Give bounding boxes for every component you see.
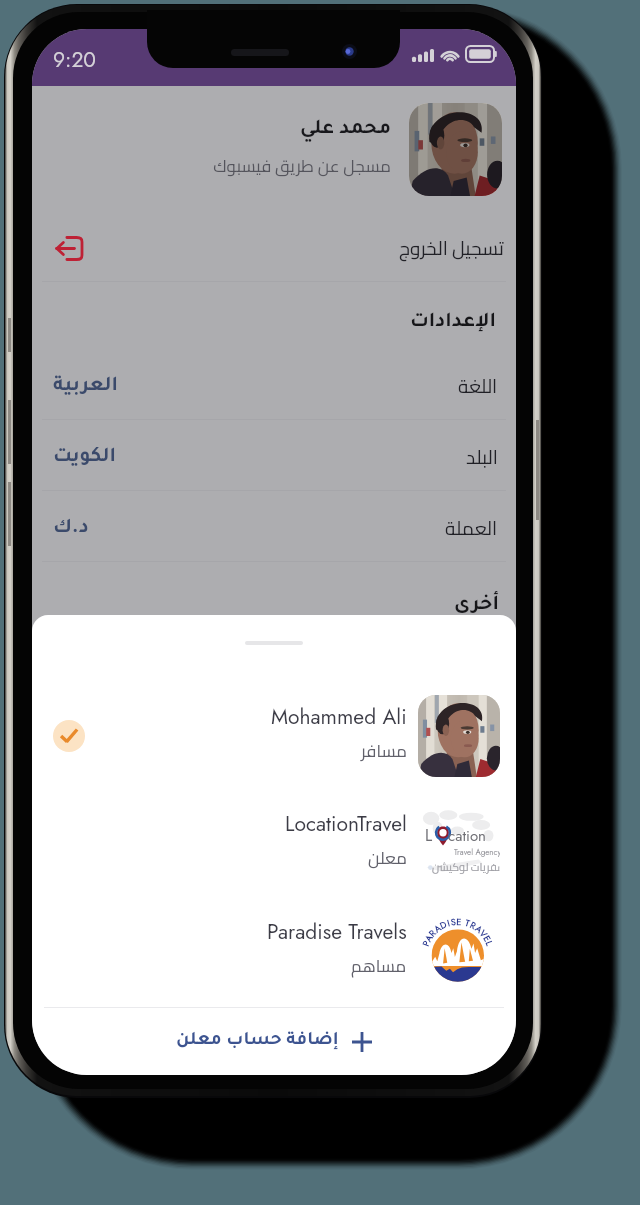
staticText: 9:20	[53, 45, 96, 75]
staticText: اللغة	[458, 368, 498, 404]
staticText: مسجل عن طريق فيسبوك	[213, 150, 391, 182]
staticText: Mohammed Ali	[271, 702, 407, 732]
button[interactable]: د.ك	[32, 493, 516, 563]
staticText: الإعدادات	[410, 312, 496, 333]
staticText: L	[425, 824, 433, 847]
staticText: cation	[448, 825, 486, 847]
staticText: الكويت	[53, 447, 116, 468]
staticText: مسافر	[361, 735, 407, 767]
staticText: سفريات لوكيشن	[432, 857, 500, 878]
staticText: Paradise Travels	[267, 917, 407, 947]
staticText: البلد	[466, 439, 498, 475]
button[interactable]: LocationTravel	[32, 802, 516, 884]
other: Logout	[55, 236, 82, 261]
staticText: LocationTravel	[285, 809, 407, 839]
button[interactable]: إضافة حساب معلن	[32, 1008, 516, 1075]
button[interactable]: الكويت	[32, 422, 516, 492]
staticText: معلن	[368, 842, 407, 874]
staticText: محمد علي	[300, 119, 391, 140]
staticText: مساهم	[351, 950, 407, 982]
staticText: إضافة حساب معلن	[176, 1032, 339, 1051]
staticText: العربية	[53, 376, 118, 397]
staticText: Travel Agency	[454, 846, 500, 858]
button[interactable]: Mohammed Ali	[32, 695, 516, 777]
staticText: د.ك	[53, 518, 89, 539]
button[interactable]: Logout	[32, 213, 516, 283]
staticText: تسجيل الخروج	[399, 230, 504, 266]
staticText: العملة	[445, 510, 498, 546]
button[interactable]: العربية	[32, 351, 516, 421]
staticText: أخرى	[454, 595, 499, 616]
button[interactable]: Paradise Travels	[32, 910, 516, 992]
